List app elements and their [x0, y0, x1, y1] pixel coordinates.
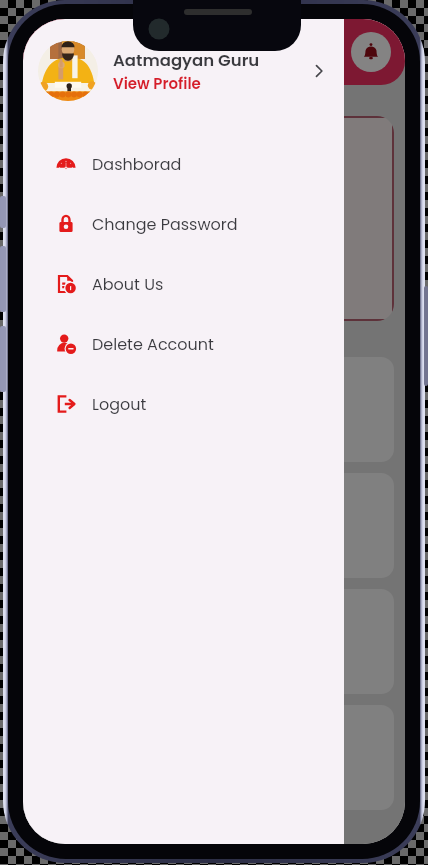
button[interactable]: Logout: [23, 374, 344, 434]
staticText: Aatmagyan Guru: [113, 49, 260, 72]
staticText: About Us: [92, 273, 164, 295]
staticText: Dashborad: [92, 153, 182, 175]
button[interactable]: Aatmagyan Guru: [23, 41, 344, 101]
button[interactable]: Notifications: [351, 32, 391, 72]
staticText: View Profile: [113, 73, 201, 94]
button[interactable]: Dashborad: [23, 134, 344, 194]
button[interactable]: Delete Account: [23, 314, 344, 374]
button[interactable]: About Us: [23, 254, 344, 314]
staticText: Logout: [92, 393, 147, 415]
staticText: Change Password: [92, 213, 238, 235]
staticText: Delete Account: [92, 333, 214, 355]
button[interactable]: Open profile: [306, 58, 332, 84]
button[interactable]: Change Password: [23, 194, 344, 254]
